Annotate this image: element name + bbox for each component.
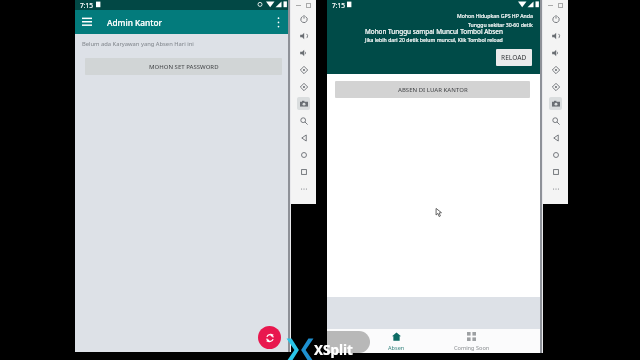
button[interactable]: Emulator control xyxy=(295,78,312,95)
button[interactable]: Refresh xyxy=(258,326,281,349)
button[interactable]: MOHON SET PASSWORD xyxy=(85,58,282,75)
button[interactable]: Emulator control xyxy=(547,146,564,163)
button[interactable]: Emulator control xyxy=(295,44,312,61)
staticText: MOHON SET PASSWORD xyxy=(149,63,219,71)
button[interactable]: Emulator control xyxy=(295,10,312,27)
staticText: Tunggu sekitar 30-60 detik xyxy=(468,21,533,28)
staticText: Admin Kantor xyxy=(107,17,162,28)
staticText: RELOAD xyxy=(501,53,527,62)
button[interactable]: Emulator control xyxy=(547,163,564,180)
button[interactable]: Absen xyxy=(359,329,434,353)
staticText: Belum ada Karyawan yang Absen Hari ini xyxy=(82,40,194,48)
button[interactable]: Emulator control xyxy=(295,27,312,44)
button[interactable]: Emulator control xyxy=(547,112,564,129)
button[interactable]: Emulator control xyxy=(547,27,564,44)
staticText: Mohon Hidupkan GPS HP Anda xyxy=(457,12,533,19)
staticText: Mohon Tunggu sampai Muncul Tombol Absen xyxy=(365,27,503,36)
staticText: ABSEN DI LUAR KANTOR xyxy=(398,86,468,94)
button[interactable]: Emulator control xyxy=(295,180,312,197)
button[interactable]: More options xyxy=(269,13,287,31)
staticText: Absen xyxy=(388,344,405,352)
button[interactable]: Emulator control xyxy=(295,95,312,112)
button[interactable]: Emulator control xyxy=(295,112,312,129)
button[interactable]: Emulator control xyxy=(547,180,564,197)
button[interactable]: ABSEN DI LUAR KANTOR xyxy=(335,81,530,98)
button[interactable]: Emulator control xyxy=(547,44,564,61)
button[interactable]: RELOAD xyxy=(496,49,532,66)
button[interactable]: Emulator control xyxy=(547,61,564,78)
button[interactable]: Emulator control xyxy=(295,163,312,180)
button[interactable]: Emulator control xyxy=(295,61,312,78)
button[interactable]: Emulator control xyxy=(295,146,312,163)
staticText: XSplit xyxy=(314,341,353,359)
button[interactable]: Emulator control xyxy=(547,78,564,95)
button[interactable]: Coming Soon xyxy=(434,329,509,353)
button[interactable]: Emulator control xyxy=(547,129,564,146)
staticText: Coming Soon xyxy=(454,344,490,352)
staticText: Jika lebih dari 20 detik belum muncul, K… xyxy=(365,36,503,43)
staticText: 7:15 xyxy=(332,1,345,10)
button[interactable]: Emulator control xyxy=(295,129,312,146)
button[interactable]: Emulator control xyxy=(547,10,564,27)
button[interactable]: Menu xyxy=(78,13,96,31)
button[interactable]: Emulator control xyxy=(547,95,564,112)
staticText: 7:15 xyxy=(80,1,93,10)
